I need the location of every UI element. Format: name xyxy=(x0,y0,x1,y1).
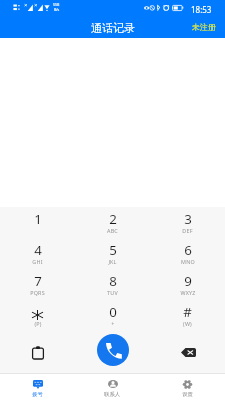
button[interactable]: 2 xyxy=(75,207,150,238)
staticText: 8 xyxy=(109,272,117,290)
staticText: TUV xyxy=(107,289,118,296)
staticText: 18:53 xyxy=(191,4,212,15)
button[interactable]: 9 xyxy=(150,269,225,300)
staticText: # xyxy=(183,303,192,321)
staticText: JKL xyxy=(108,258,117,265)
staticText: 7 xyxy=(34,272,42,290)
button[interactable]: 4 xyxy=(0,238,75,269)
staticText: 4 xyxy=(34,241,42,259)
staticText: 2 xyxy=(109,210,117,228)
staticText: ABC xyxy=(107,227,118,234)
staticText: 3 xyxy=(184,210,192,228)
button[interactable]: 7 xyxy=(0,269,75,300)
staticText: (P) xyxy=(34,320,42,327)
staticText: WXYZ xyxy=(180,289,196,296)
staticText: 5 xyxy=(109,241,117,259)
staticText: MNO xyxy=(181,258,195,265)
staticText: 0 xyxy=(109,303,117,321)
staticText: 9 xyxy=(184,272,192,290)
staticText: 6 xyxy=(184,241,192,259)
staticText: + xyxy=(111,320,115,327)
button[interactable]: 联系人 xyxy=(75,374,150,400)
button[interactable]: 拨号 xyxy=(0,374,75,400)
staticText: GHI xyxy=(32,258,43,265)
staticText: DEF xyxy=(182,227,193,234)
staticText: 拨号 xyxy=(32,391,43,398)
button[interactable]: 未注册 xyxy=(183,16,225,38)
staticText: 未注册 xyxy=(192,22,216,32)
button[interactable]: # xyxy=(150,300,225,331)
button[interactable]: Paste number xyxy=(28,342,48,362)
button[interactable]: (P) xyxy=(0,300,75,331)
button[interactable]: 6 xyxy=(150,238,225,269)
staticText: 通话记录 xyxy=(91,21,135,35)
staticText: 联系人 xyxy=(104,391,121,398)
button[interactable]: 0 xyxy=(75,300,150,331)
button[interactable]: 设置 xyxy=(150,374,225,400)
button[interactable]: 3 xyxy=(150,207,225,238)
staticText: (W) xyxy=(183,320,192,327)
button[interactable]: 8 xyxy=(75,269,150,300)
staticText: PQRS xyxy=(30,289,45,296)
button[interactable]: Delete xyxy=(178,342,198,362)
staticText: 1 xyxy=(34,210,42,228)
button[interactable]: 5 xyxy=(75,238,150,269)
button[interactable]: 1 xyxy=(0,207,75,238)
staticText: 设置 xyxy=(182,391,193,398)
staticText: 55B B/s xyxy=(53,2,60,12)
button[interactable]: Call xyxy=(97,334,129,366)
